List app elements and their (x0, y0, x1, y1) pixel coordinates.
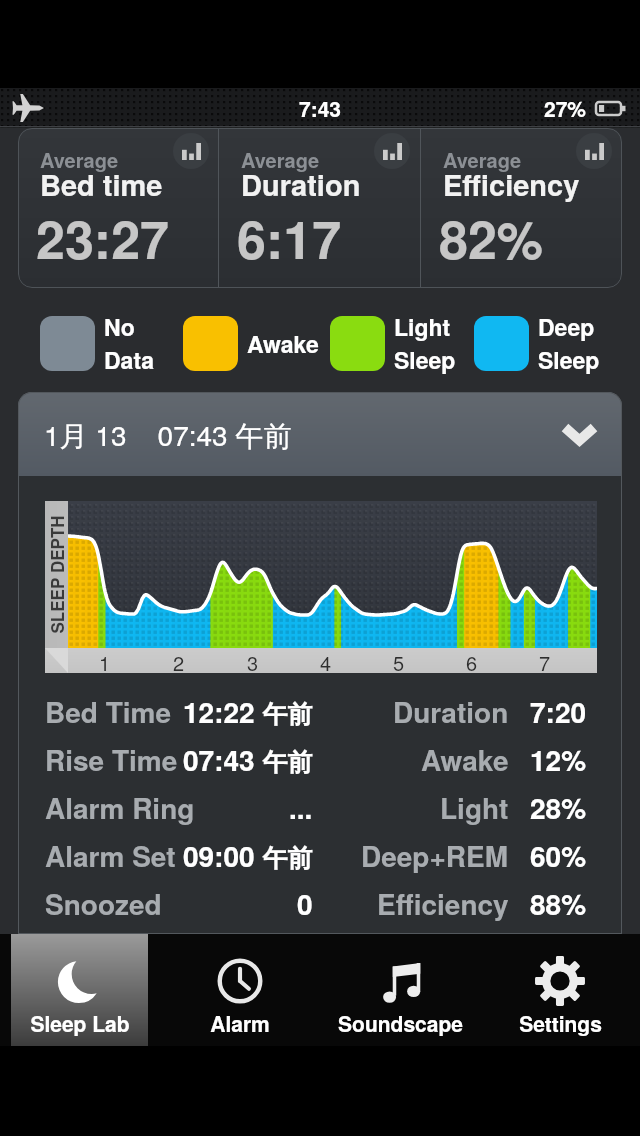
button[interactable]: Bed Time (18, 687, 622, 735)
button[interactable]: Snoozed (18, 879, 622, 927)
button[interactable]: Awake (183, 316, 238, 371)
staticText: 4 (320, 648, 332, 673)
staticText: 0 (297, 883, 313, 923)
staticText: Awake (247, 327, 319, 360)
staticText: 09:00 午前 (183, 835, 313, 875)
staticText: 12:22 午前 (183, 691, 313, 731)
staticText: Settings (519, 1008, 602, 1038)
button[interactable]: Statistics (576, 133, 612, 169)
button[interactable]: Alarm Ring (18, 783, 622, 831)
button[interactable]: Soundscape (320, 934, 480, 1046)
staticText: Rise Time (45, 739, 178, 779)
button[interactable]: Light (330, 316, 385, 371)
staticText: 1月 13 07:43 午前 (44, 414, 292, 454)
staticText: 28% (530, 787, 587, 827)
staticText: Snoozed (45, 883, 162, 923)
staticText: Efficiency (377, 883, 509, 923)
staticText: No (104, 310, 135, 343)
staticText: 1 (99, 648, 111, 673)
button[interactable]: 1月 13 07:43 午前 (18, 392, 622, 476)
staticText: 60% (530, 835, 587, 875)
staticText: Alarm Ring (45, 787, 195, 827)
button[interactable]: No (40, 316, 95, 371)
staticText: 88% (530, 883, 587, 923)
button[interactable]: Average (18, 128, 218, 288)
button[interactable]: Sleep Lab (0, 934, 160, 1046)
staticText: 3 (247, 648, 259, 673)
staticText: Alarm (210, 1008, 270, 1038)
staticText: 6:17 (237, 200, 342, 274)
staticText: Bed Time (45, 691, 172, 731)
staticText: Sleep Lab (30, 1008, 130, 1038)
staticText: ... (289, 787, 313, 827)
button[interactable]: Deep (474, 316, 529, 371)
staticText: 82% (439, 200, 544, 274)
button[interactable]: Alarm Set (18, 831, 622, 879)
staticText: 5 (393, 648, 405, 673)
staticText: Average (443, 145, 522, 174)
staticText: SLEEP DEPTH (44, 514, 68, 633)
staticText: Duration (393, 691, 509, 731)
staticText: 7:20 (530, 691, 587, 731)
button[interactable]: Statistics (374, 133, 410, 169)
staticText: Data (104, 343, 154, 376)
staticText: 2 (173, 648, 185, 673)
staticText: 6 (466, 648, 478, 673)
staticText: 07:43 午前 (183, 739, 313, 779)
staticText: Awake (421, 739, 509, 779)
staticText: Deep+REM (361, 835, 509, 875)
staticText: Soundscape (338, 1008, 463, 1038)
button[interactable]: Statistics (173, 133, 209, 169)
staticText: Average (241, 145, 320, 174)
button[interactable]: Rise Time (18, 735, 622, 783)
staticText: 27% (544, 93, 587, 123)
staticText: Light (440, 787, 509, 827)
staticText: Deep (538, 310, 595, 343)
staticText: 12% (530, 739, 587, 779)
staticText: 7:43 (299, 93, 342, 123)
staticText: Efficiency (443, 163, 580, 205)
button[interactable]: Settings (480, 934, 640, 1046)
staticText: Duration (241, 163, 361, 205)
staticText: 7 (539, 648, 551, 673)
staticText: Light (394, 310, 451, 343)
staticText: Sleep (538, 343, 600, 376)
staticText: Alarm Set (45, 835, 176, 875)
button[interactable]: Average (219, 128, 420, 288)
other: Collapse (565, 424, 594, 444)
staticText: Sleep (394, 343, 456, 376)
staticText: 23:27 (36, 200, 169, 274)
button[interactable]: Average (421, 128, 622, 288)
staticText: Average (40, 145, 119, 174)
staticText: Bed time (40, 163, 163, 205)
button[interactable]: Alarm (160, 934, 320, 1046)
